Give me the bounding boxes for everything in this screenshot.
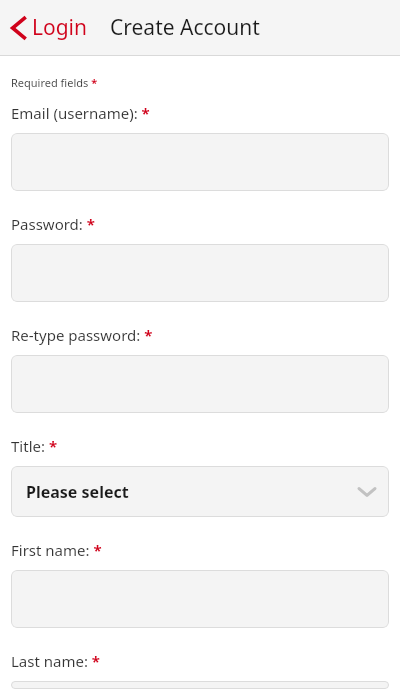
staticText: Re-type password: * [11,325,153,345]
staticText: Title: * [11,436,58,456]
button[interactable]: Please select [11,466,389,517]
button[interactable]: Last name [11,681,389,689]
button[interactable]: Password [11,244,389,302]
staticText: Please select [26,481,129,503]
staticText: Email (username): * [11,103,150,123]
staticText: Required fields * [11,75,98,90]
staticText: Login [32,13,88,42]
staticText: Create Account [110,13,260,42]
button[interactable]: Login [0,0,96,55]
button[interactable]: Email (username) [11,133,389,191]
staticText: Last name: * [11,651,100,671]
button[interactable]: Re-type password [11,355,389,413]
staticText: First name: * [11,540,102,560]
button[interactable]: First name [11,570,389,628]
staticText: Password: * [11,214,95,234]
